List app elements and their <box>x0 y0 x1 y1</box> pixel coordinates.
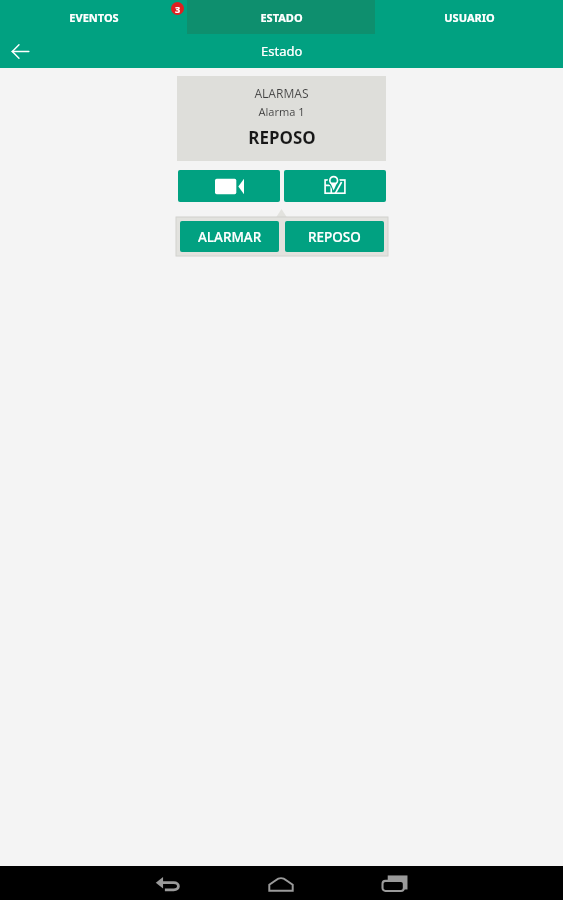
staticText: REPOSO <box>308 228 361 246</box>
staticText: ESTADO <box>260 10 303 25</box>
button[interactable]: EVENTOS <box>0 0 187 34</box>
button[interactable]: Recent apps <box>374 866 416 900</box>
button[interactable]: Back <box>5 36 35 66</box>
button[interactable]: Back <box>147 866 189 900</box>
button[interactable]: ESTADO <box>187 0 375 34</box>
staticText: Estado <box>261 42 303 60</box>
button[interactable]: Home <box>260 866 302 900</box>
staticText: EVENTOS <box>69 10 119 25</box>
staticText: ALARMAR <box>198 228 262 246</box>
staticText: USUARIO <box>444 10 495 25</box>
staticText: ALARMAS <box>254 85 309 101</box>
button[interactable]: REPOSO <box>285 221 384 252</box>
staticText: REPOSO <box>248 126 316 149</box>
button[interactable]: USUARIO <box>375 0 563 34</box>
staticText: 3 <box>175 3 181 15</box>
button[interactable]: ALARMAR <box>180 221 279 252</box>
button[interactable]: Video <box>178 170 280 202</box>
button[interactable]: Map <box>284 170 386 202</box>
staticText: Alarma 1 <box>258 104 305 119</box>
